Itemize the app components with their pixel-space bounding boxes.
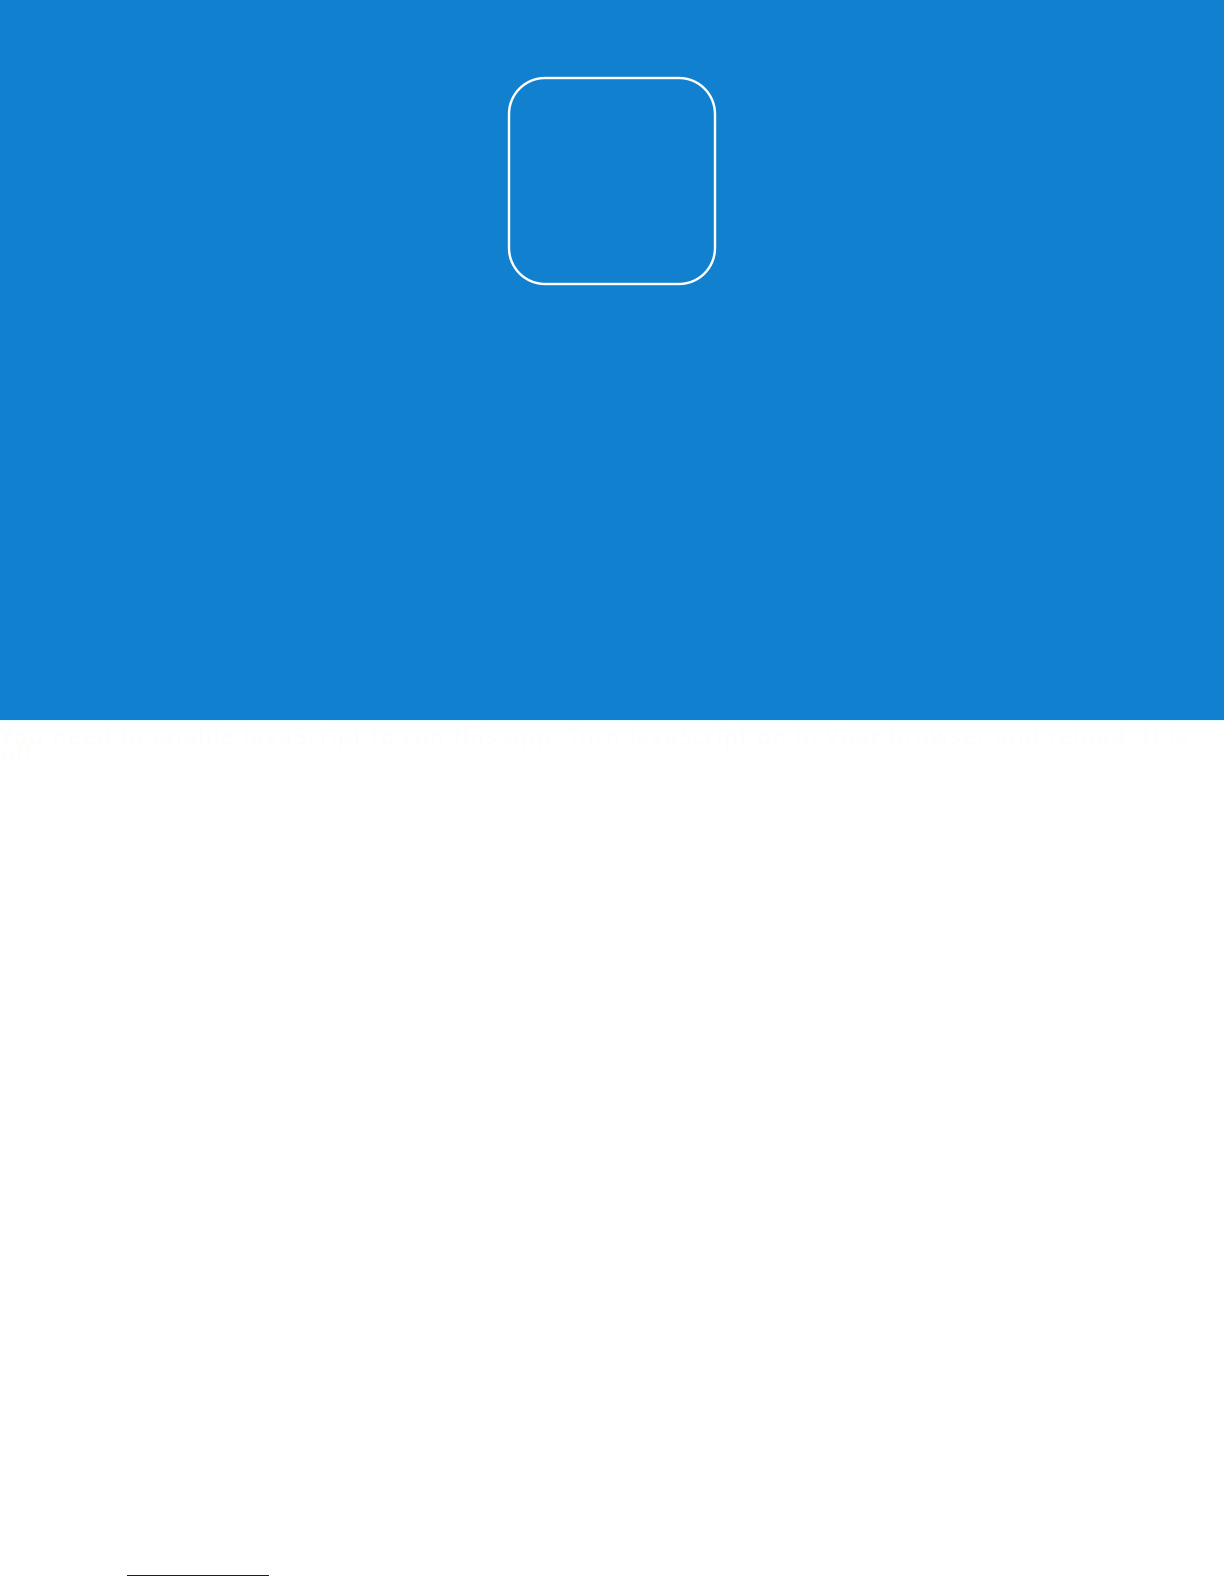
- button[interactable]: App mark: [509, 78, 715, 284]
- button[interactable]: enable JavaScript: [127, 1550, 276, 1576]
